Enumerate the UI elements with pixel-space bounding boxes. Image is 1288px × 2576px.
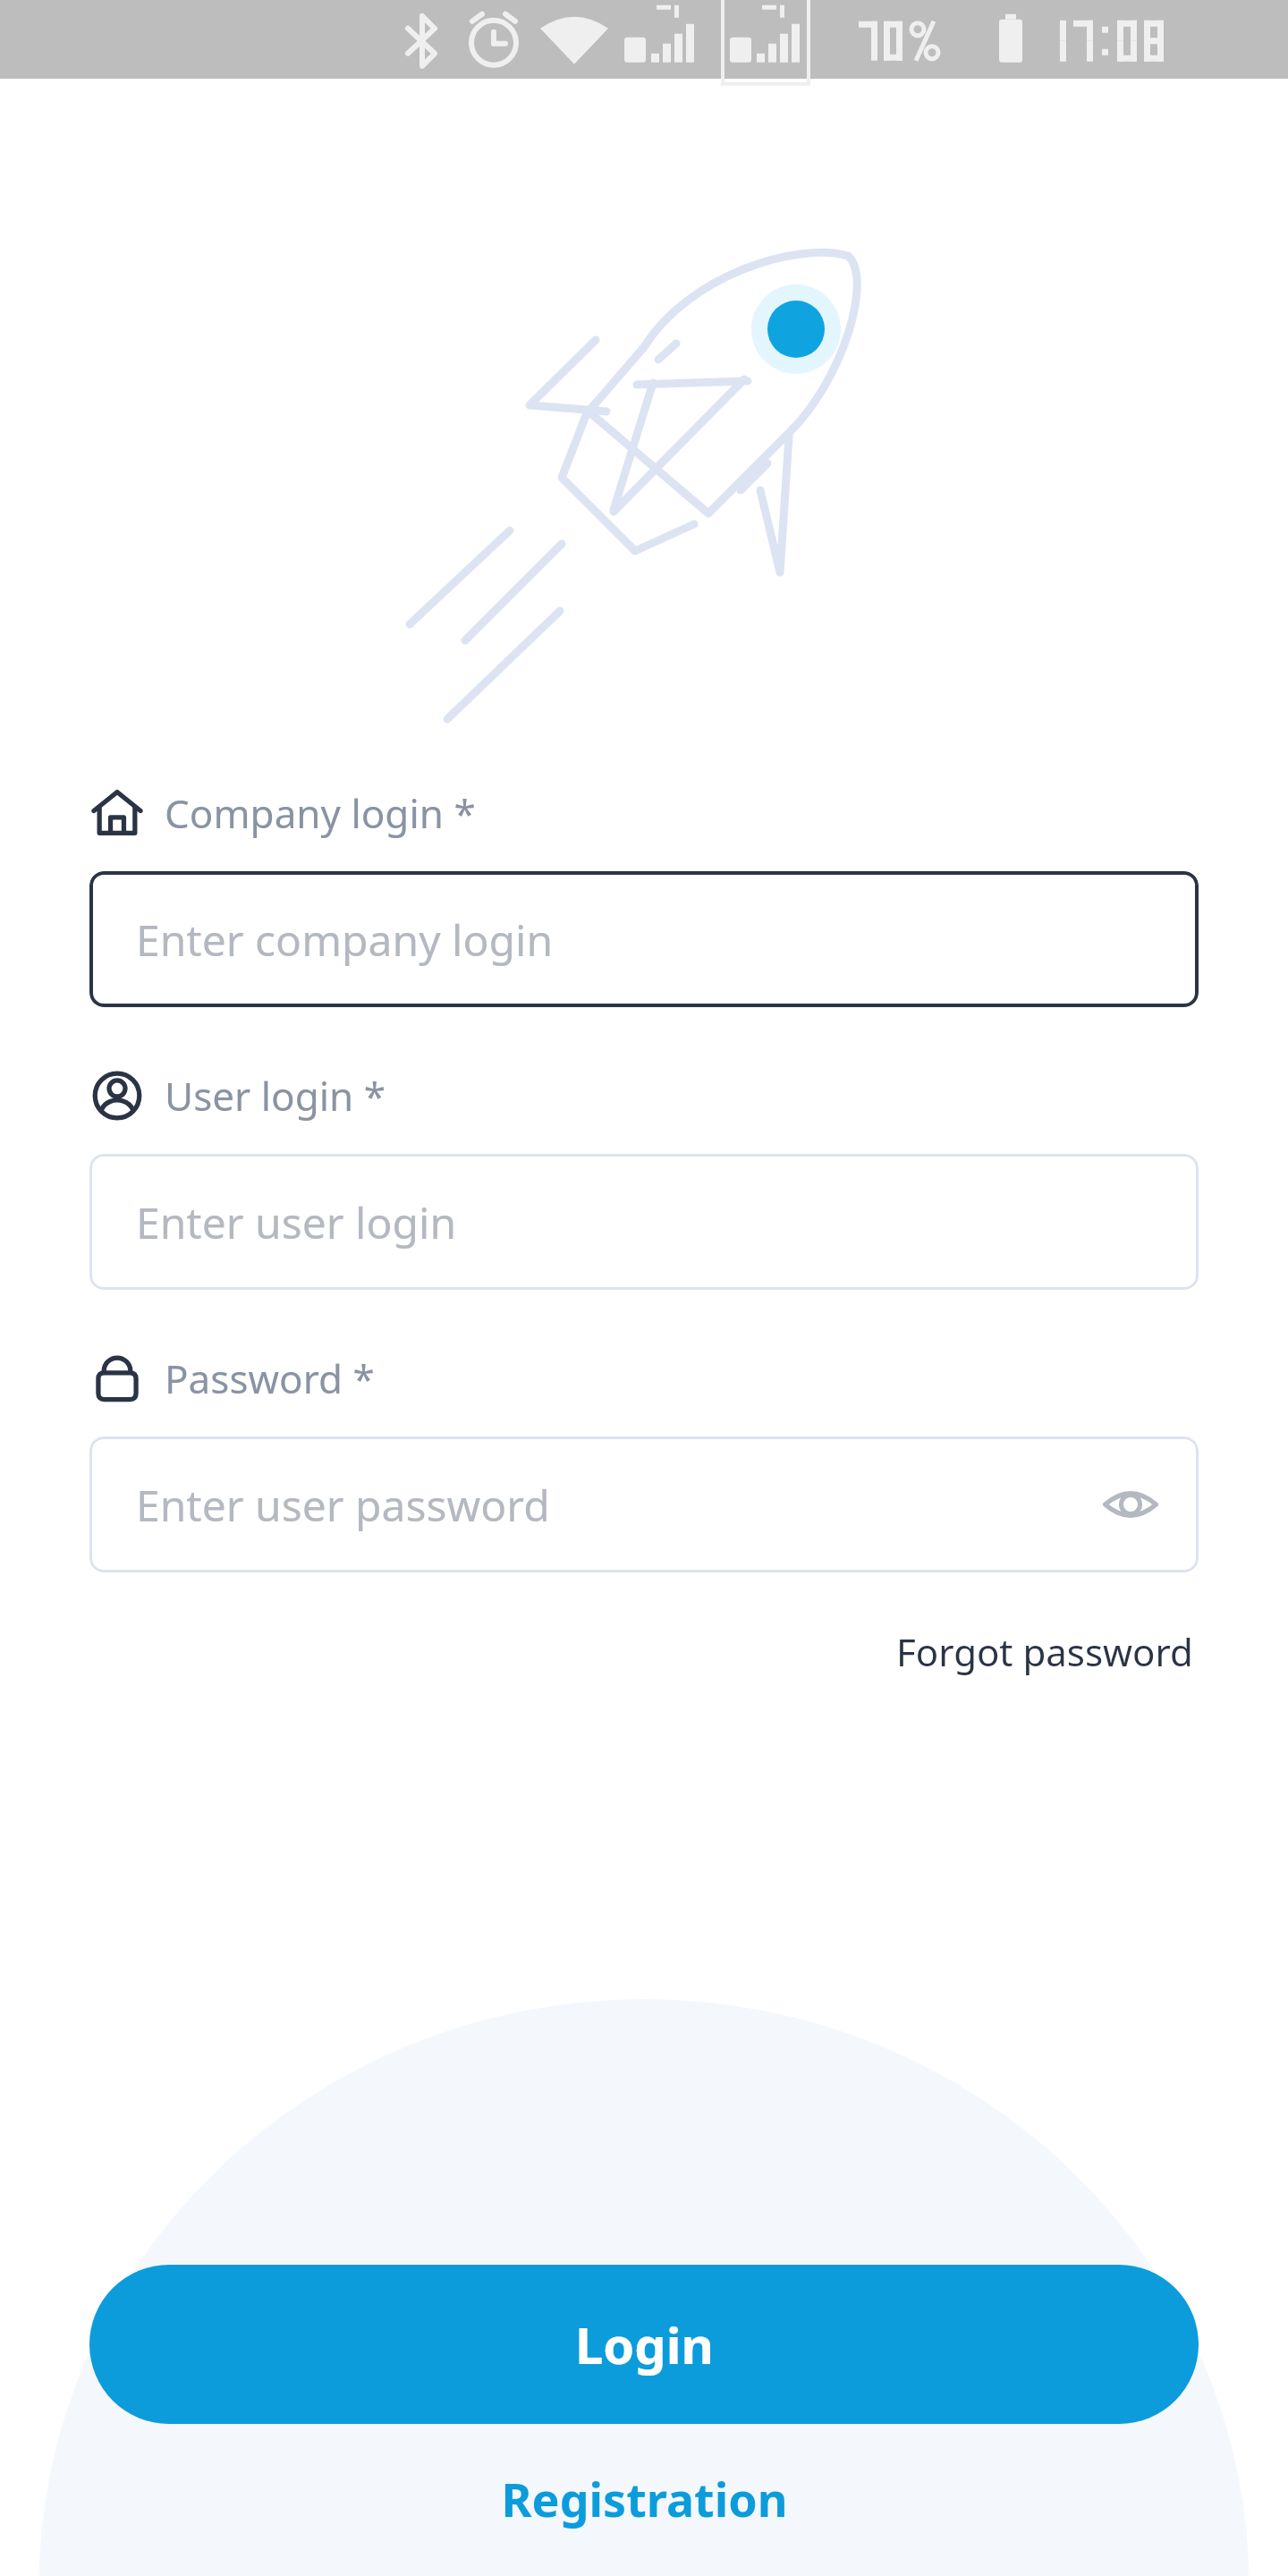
staticText: Login <box>575 2310 714 2378</box>
button[interactable]: Enter user password <box>89 1436 1199 1572</box>
staticText: Enter user password <box>136 1476 550 1534</box>
button[interactable]: Show password <box>1093 1467 1168 1542</box>
staticText: Password * <box>165 1352 375 1405</box>
staticText: Forgot password <box>896 1626 1193 1677</box>
staticText: Company login * <box>165 786 476 840</box>
staticText: User login * <box>165 1069 386 1123</box>
staticText: Enter user login <box>136 1193 457 1251</box>
button[interactable]: Login <box>89 2265 1199 2424</box>
staticText: Enter company login <box>136 911 554 969</box>
staticText: Registration <box>501 2467 788 2530</box>
button[interactable]: Registration <box>0 2467 1288 2565</box>
button[interactable]: Enter user login <box>89 1154 1199 1290</box>
button[interactable]: Forgot password <box>891 1619 1199 1684</box>
button[interactable]: Enter company login <box>89 871 1199 1007</box>
